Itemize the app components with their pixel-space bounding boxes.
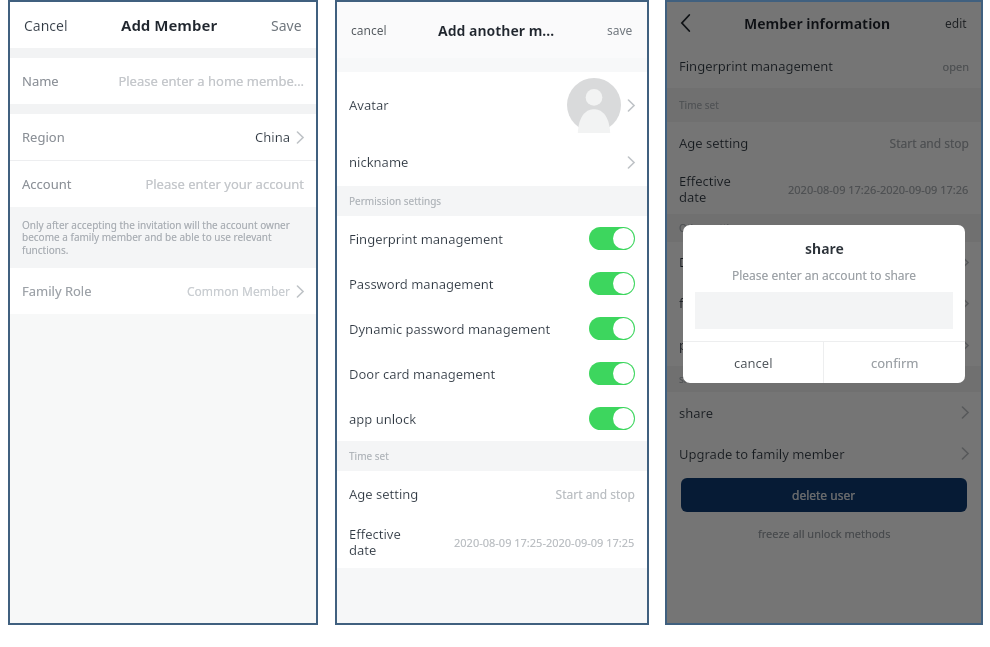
staticText: Cancel — [24, 16, 68, 35]
staticText: Add Member — [121, 15, 218, 35]
button[interactable]: Password management — [337, 261, 647, 306]
staticText: Permission settings — [349, 194, 442, 208]
button[interactable]: freeze all unlock methods — [667, 516, 981, 550]
staticText: Only after accepting the invitation will… — [22, 218, 304, 257]
button[interactable]: fingerprint management — [667, 282, 981, 324]
button[interactable]: Door card management — [667, 242, 981, 282]
staticText: password management — [679, 336, 824, 354]
staticText: Member information — [744, 14, 891, 33]
staticText: Region — [22, 128, 65, 146]
button[interactable]: app unlock — [337, 396, 647, 441]
button[interactable]: Dynamic password management — [337, 306, 647, 351]
staticText: Effective date — [349, 525, 419, 559]
button[interactable]: Account — [10, 161, 316, 207]
staticText: share — [805, 239, 844, 258]
staticText: 2020-08-09 17:25-2020-09-09 17:25 — [454, 535, 635, 550]
staticText: Door card management — [679, 253, 826, 271]
staticText: Please enter an account to share — [732, 267, 917, 283]
staticText: share — [679, 404, 713, 422]
staticText: Age setting — [679, 134, 749, 152]
button[interactable]: Effective date — [337, 516, 647, 568]
button[interactable]: edit — [943, 13, 969, 33]
staticText: app unlock — [349, 410, 417, 428]
staticText: China — [255, 128, 290, 146]
button[interactable]: Avatar — [337, 72, 647, 138]
staticText: Time set — [679, 98, 719, 112]
staticText: save — [607, 22, 633, 38]
button[interactable]: Name — [10, 58, 316, 104]
staticText: Start and stop — [555, 486, 635, 502]
button[interactable]: Save — [269, 14, 304, 37]
button[interactable]: Fingerprint management — [667, 44, 981, 88]
button[interactable]: Cancel — [22, 14, 70, 37]
button[interactable]: cancel — [683, 342, 823, 383]
staticText: Time set — [349, 449, 389, 463]
button[interactable]: Door card management — [337, 351, 647, 396]
button[interactable]: Age setting — [667, 122, 981, 164]
button[interactable]: Upgrade to family member — [667, 433, 981, 474]
button[interactable]: Toggle — [589, 407, 635, 430]
button[interactable]: confirm — [824, 342, 965, 383]
button[interactable]: password management — [667, 324, 981, 366]
staticText: confirm — [871, 354, 919, 372]
button[interactable]: Toggle — [589, 317, 635, 340]
button[interactable]: Age setting — [337, 471, 647, 516]
button[interactable]: delete user — [681, 478, 967, 512]
button[interactable]: save — [605, 20, 635, 40]
button[interactable]: Back — [679, 13, 692, 33]
staticText: Upgrade to family member — [679, 445, 845, 463]
staticText: Please enter a home membe… — [118, 72, 304, 90]
staticText: Common Member — [186, 283, 290, 299]
staticText: Door card management — [349, 365, 496, 383]
button[interactable]: share — [667, 392, 981, 433]
staticText: Start and stop — [889, 135, 969, 151]
button[interactable]: Toggle — [589, 227, 635, 250]
staticText: cancel — [351, 22, 387, 38]
staticText: Password management — [349, 275, 494, 293]
button[interactable]: nickname — [337, 138, 647, 186]
staticText: 2020-08-09 17:26-2020-09-09 17:26 — [788, 182, 969, 197]
staticText: Family Role — [22, 282, 92, 300]
staticText: Other settings — [679, 221, 747, 235]
staticText: Dynamic password management — [349, 320, 551, 338]
staticText: Fingerprint management — [679, 57, 833, 75]
staticText: Fingerprint management — [349, 230, 503, 248]
staticText: fingerprint management — [679, 294, 831, 312]
staticText: Save — [271, 16, 302, 35]
button[interactable]: Region — [10, 114, 316, 160]
button[interactable]: Toggle — [589, 362, 635, 385]
staticText: Age setting — [349, 485, 419, 503]
button[interactable]: Effective date — [667, 164, 981, 214]
staticText: Name — [22, 72, 59, 90]
button[interactable]: cancel — [349, 20, 389, 40]
staticText: cancel — [734, 354, 773, 372]
staticText: share — [679, 372, 706, 386]
staticText: Account — [22, 175, 72, 193]
button[interactable]: Fingerprint management — [337, 216, 647, 261]
button[interactable]: Family Role — [10, 268, 316, 314]
staticText: open — [942, 59, 969, 74]
staticText: delete user — [792, 487, 856, 503]
staticText: nickname — [349, 153, 409, 171]
staticText: Effective date — [679, 172, 749, 206]
staticText: Please enter your account — [145, 175, 304, 193]
button[interactable]: Toggle — [589, 272, 635, 295]
staticText: Avatar — [349, 96, 389, 114]
staticText: Add another m… — [438, 21, 555, 40]
staticText: edit — [945, 15, 967, 31]
staticText: freeze all unlock methods — [758, 526, 891, 541]
